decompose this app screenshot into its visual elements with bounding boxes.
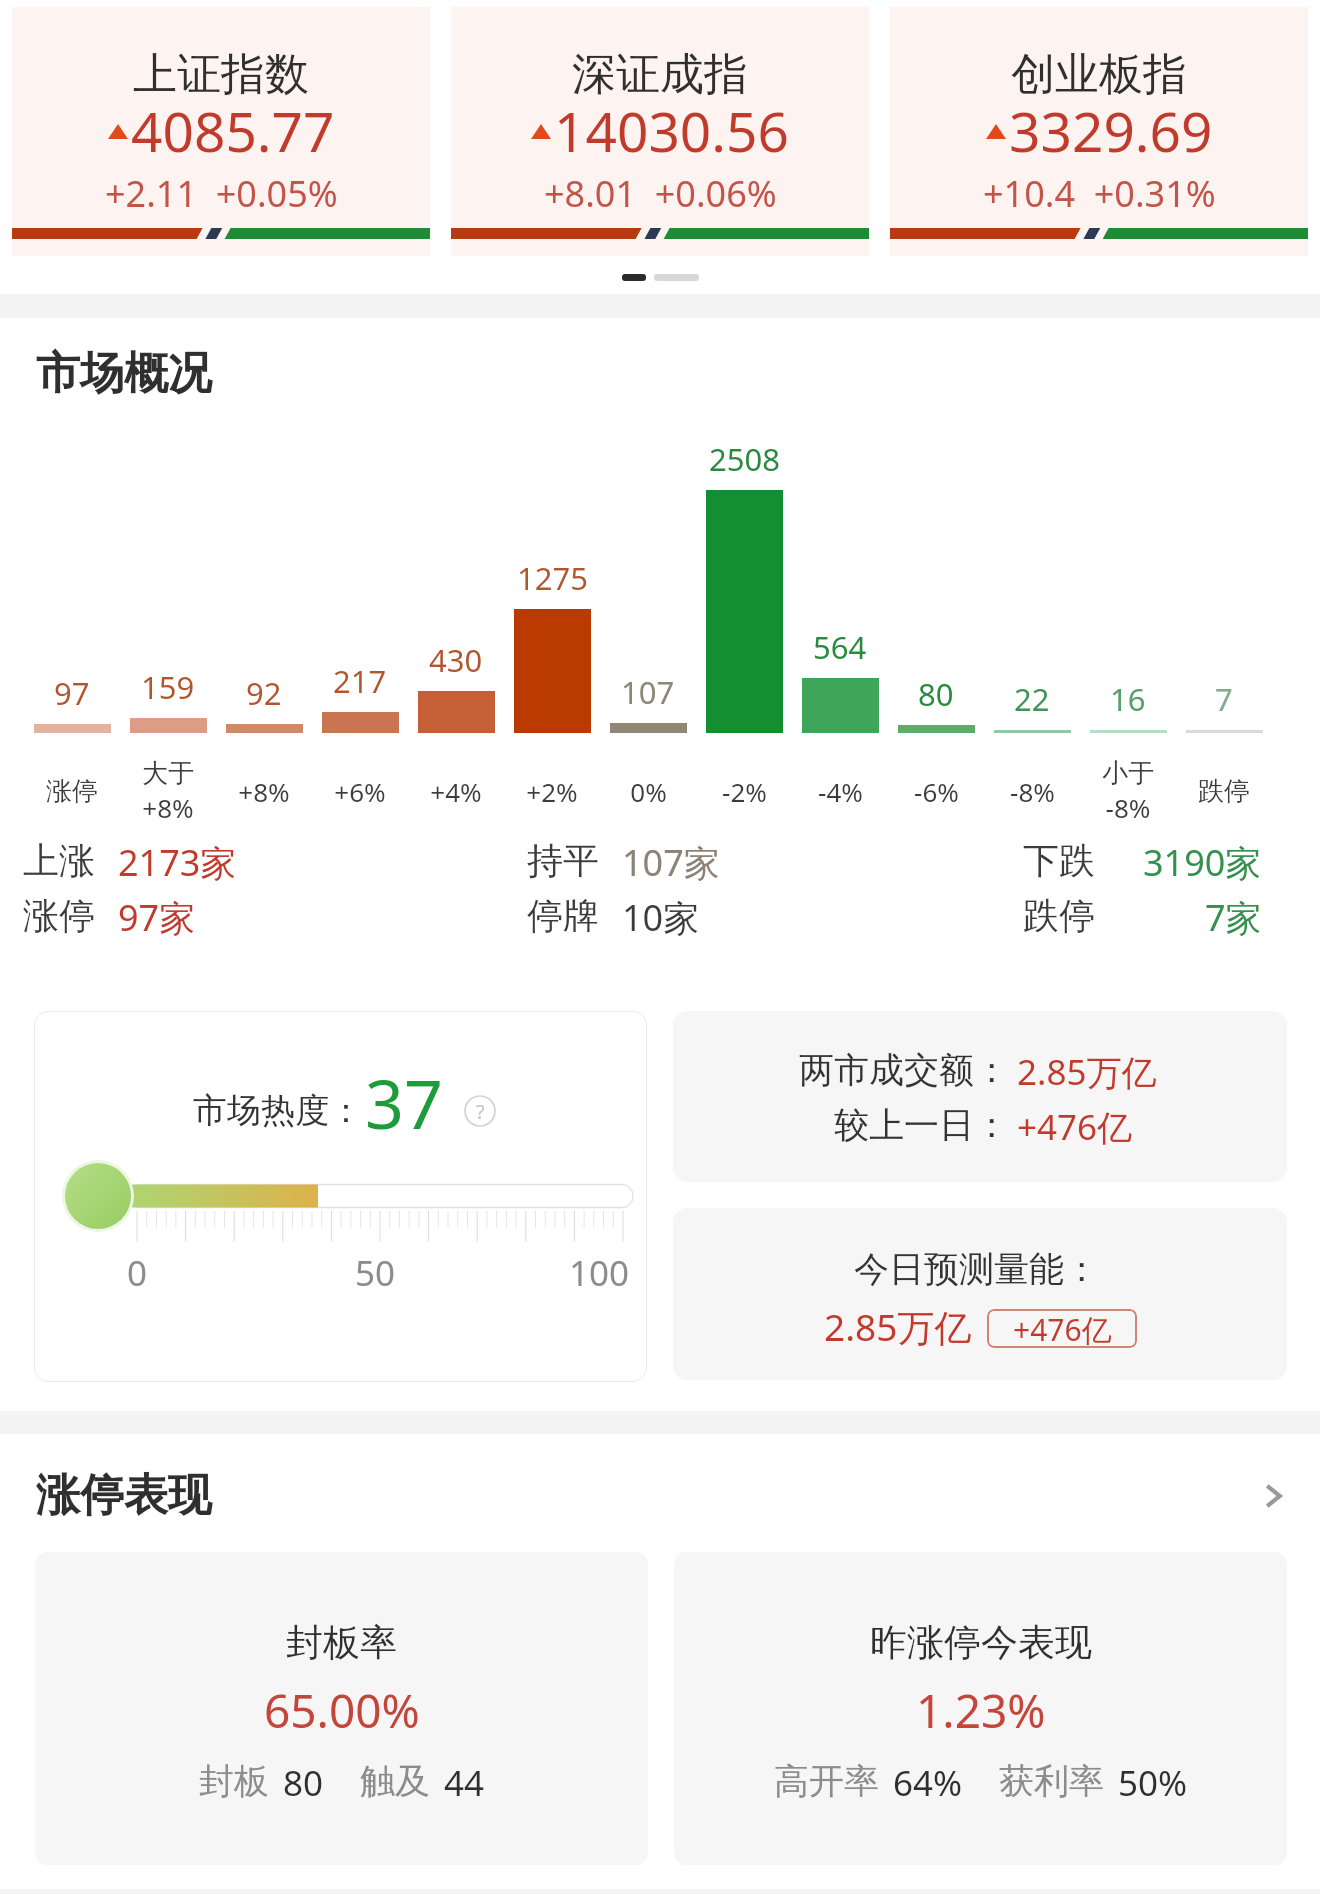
staticText: 44: [444, 1759, 485, 1807]
button[interactable]: 今日预测量能：: [673, 1208, 1287, 1380]
button[interactable]: 两市成交额：: [673, 1011, 1287, 1182]
staticText: 持平: [527, 838, 599, 881]
staticText: 2.85万亿: [824, 1301, 972, 1352]
button[interactable]: 深证成指: [451, 7, 869, 256]
staticText: 2.85万亿: [1017, 1048, 1157, 1096]
button[interactable]: 市场热度：: [34, 1011, 647, 1382]
staticText: 2173家: [118, 838, 237, 881]
staticText: +6%: [334, 774, 386, 809]
staticText: 7家: [1205, 893, 1262, 936]
button[interactable]: 上证指数: [12, 7, 430, 256]
staticText: 下跌: [1023, 838, 1095, 881]
staticText: ?: [476, 1098, 485, 1125]
staticText: 高开率: [774, 1759, 879, 1803]
staticText: 37: [365, 1056, 443, 1149]
staticText: 昨涨停今表现: [870, 1619, 1092, 1666]
staticText: 92: [246, 672, 282, 714]
staticText: 上证指数: [133, 47, 309, 102]
staticText: 65.00%: [264, 1679, 420, 1742]
staticText: 两市成交额：: [799, 1048, 1009, 1092]
staticText: 市场热度：: [193, 1089, 363, 1132]
staticText: 217: [333, 660, 387, 702]
staticText: 16: [1110, 678, 1146, 720]
staticText: +8%: [238, 774, 290, 809]
staticText: 7: [1215, 678, 1233, 720]
staticText: 97家: [118, 893, 196, 936]
staticText: 430: [429, 639, 483, 681]
staticText: 64%: [893, 1759, 963, 1807]
staticText: 封板: [199, 1759, 269, 1803]
staticText: -8%: [1010, 774, 1055, 809]
staticText: 0: [127, 1249, 148, 1297]
staticText: -4%: [818, 774, 863, 809]
staticText: 14030.56: [554, 93, 789, 168]
staticText: 97: [54, 672, 90, 714]
staticText: 创业板指: [1011, 47, 1187, 102]
staticText: 3190家: [1143, 838, 1262, 881]
staticText: +2.11 +0.05%: [105, 169, 338, 218]
button[interactable]: 昨涨停今表现: [674, 1552, 1287, 1865]
staticText: 100: [569, 1249, 630, 1297]
staticText: 市场概况: [36, 346, 212, 401]
staticText: 停牌: [527, 893, 599, 936]
staticText: 涨停: [46, 775, 98, 808]
staticText: 50: [355, 1249, 396, 1297]
staticText: 107家: [622, 838, 720, 881]
staticText: 10家: [622, 893, 700, 936]
staticText: 80: [283, 1759, 324, 1807]
staticText: 封板率: [286, 1619, 397, 1666]
staticText: 触及: [360, 1759, 430, 1803]
staticText: 大于 +8%: [142, 757, 194, 825]
staticText: +10.4 +0.31%: [983, 169, 1216, 218]
staticText: +4%: [430, 774, 482, 809]
staticText: 跌停: [1023, 893, 1095, 936]
staticText: +2%: [526, 774, 578, 809]
staticText: 跌停: [1198, 775, 1250, 808]
staticText: +8.01 +0.06%: [544, 169, 777, 218]
staticText: -2%: [722, 774, 767, 809]
staticText: 80: [918, 673, 954, 715]
button[interactable]: 封板率: [35, 1552, 648, 1865]
staticText: 22: [1014, 678, 1050, 720]
staticText: 564: [813, 626, 867, 668]
staticText: 50%: [1118, 1759, 1188, 1807]
staticText: 1.23%: [916, 1679, 1046, 1742]
staticText: 107: [621, 671, 675, 713]
staticText: 0%: [630, 774, 667, 809]
staticText: 1275: [517, 557, 588, 599]
other: 查看更多: [1256, 1479, 1290, 1513]
staticText: 较上一日：: [834, 1103, 1009, 1147]
staticText: +476亿: [1017, 1103, 1133, 1151]
staticText: 2508: [709, 438, 780, 480]
staticText: 3329.69: [1009, 93, 1213, 168]
staticText: 159: [141, 666, 195, 708]
staticText: 深证成指: [572, 47, 748, 102]
button[interactable]: 涨停表现: [36, 1468, 1290, 1523]
staticText: 4085.77: [131, 93, 335, 168]
staticText: 涨停表现: [36, 1468, 212, 1523]
staticText: 获利率: [999, 1759, 1104, 1803]
button[interactable]: 创业板指: [890, 7, 1308, 256]
staticText: 涨停: [23, 893, 95, 936]
staticText: -6%: [914, 774, 959, 809]
staticText: 今日预测量能：: [854, 1247, 1099, 1291]
staticText: 小于 -8%: [1102, 757, 1154, 825]
staticText: +476亿: [1013, 1309, 1112, 1348]
staticText: 上涨: [23, 838, 95, 881]
